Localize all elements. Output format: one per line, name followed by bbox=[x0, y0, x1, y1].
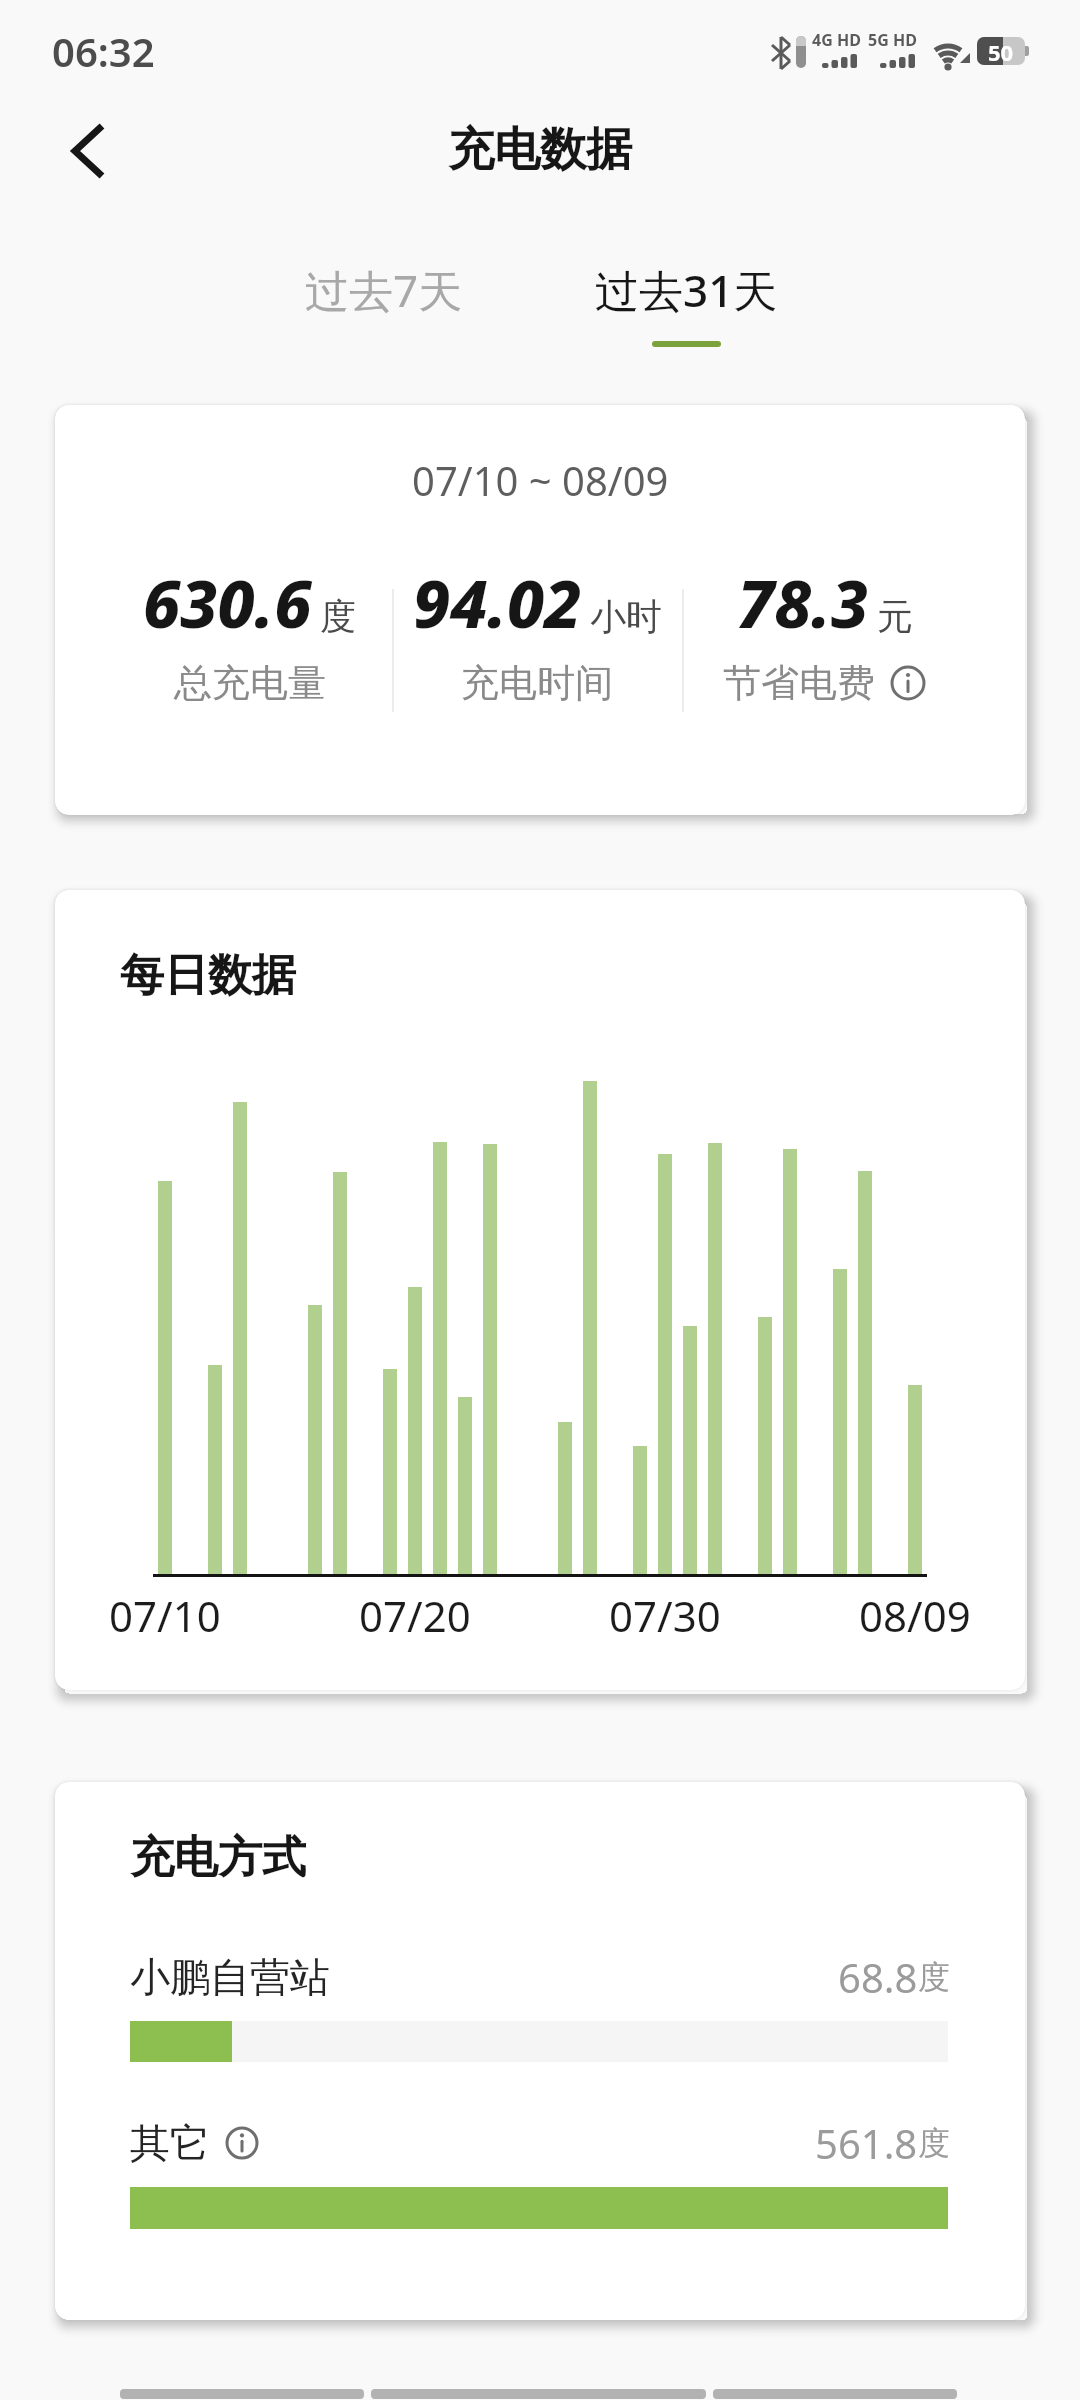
staticText: 度 bbox=[918, 2123, 950, 2163]
button[interactable] bbox=[224, 2125, 260, 2161]
staticText: 06:32 bbox=[52, 24, 155, 74]
staticText: 过去31天 bbox=[595, 260, 778, 320]
staticText: 07/10 ~ 08/09 bbox=[412, 453, 669, 507]
button[interactable] bbox=[130, 2021, 948, 2062]
staticText: 94.02 bbox=[413, 557, 582, 647]
staticText: 充电方式 bbox=[130, 1830, 306, 1885]
staticText: 07/10 bbox=[109, 1587, 221, 1644]
staticText: 总充电量 bbox=[174, 659, 326, 707]
staticText: 小时 bbox=[590, 594, 662, 639]
staticText: 68.8 bbox=[838, 1950, 918, 2004]
staticText: 07/30 bbox=[609, 1587, 721, 1644]
staticText: 5G HD bbox=[868, 29, 917, 51]
staticText: 过去7天 bbox=[305, 260, 463, 320]
staticText: 78.3 bbox=[737, 557, 869, 647]
button[interactable] bbox=[889, 664, 927, 702]
staticText: 度 bbox=[918, 1957, 950, 1997]
staticText: 节省电费 bbox=[723, 659, 875, 707]
staticText: 07/20 bbox=[359, 1587, 471, 1644]
staticText: 08/09 bbox=[859, 1587, 971, 1644]
staticText: 4G HD bbox=[812, 29, 861, 51]
staticText: 其它 bbox=[130, 2118, 210, 2168]
staticText: 50 bbox=[988, 37, 1014, 65]
button[interactable] bbox=[72, 124, 104, 178]
button[interactable]: 过去31天 bbox=[556, 255, 816, 325]
button[interactable]: 过去7天 bbox=[254, 255, 514, 325]
staticText: 630.6 bbox=[143, 557, 312, 647]
staticText: 度 bbox=[320, 594, 356, 639]
staticText: 561.8 bbox=[815, 2116, 918, 2170]
staticText: 每日数据 bbox=[120, 948, 296, 1003]
staticText: 充电数据 bbox=[448, 121, 632, 179]
staticText: 小鹏自营站 bbox=[130, 1952, 330, 2002]
staticText: 元 bbox=[877, 594, 913, 639]
staticText: 充电时间 bbox=[461, 659, 613, 707]
